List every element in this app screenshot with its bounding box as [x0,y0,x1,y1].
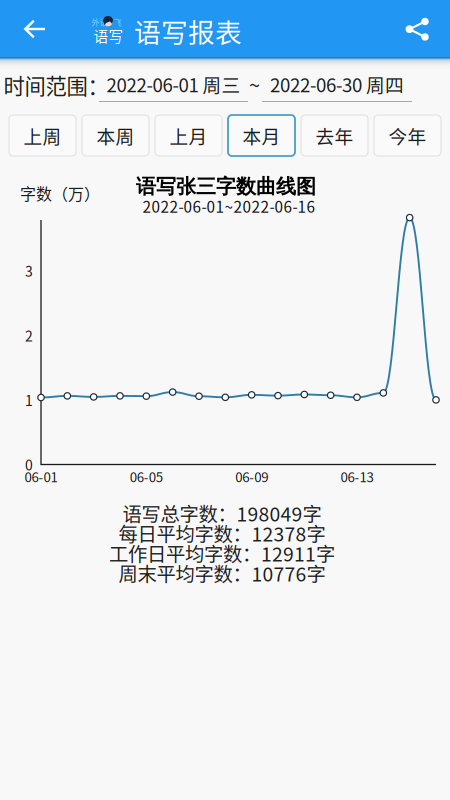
button[interactable]: 今年 [374,115,441,156]
button[interactable]: 2022-06-30 周四 [262,72,412,106]
staticText: 2022-06-01 周三 [106,70,240,97]
staticText: 上周 [23,122,61,149]
button[interactable]: 本周 [82,115,149,156]
staticText: 今年 [388,122,426,149]
staticText: 语写张三字数曲线图 [136,174,316,199]
button[interactable]: 上周 [9,115,76,156]
staticText: 06-05 [130,467,163,486]
staticText: 06-13 [340,467,373,486]
staticText: 06-09 [235,467,268,486]
staticText: 时间范围： [3,70,108,100]
staticText: 2022-06-30 周四 [270,70,404,97]
staticText: 去年 [315,122,353,149]
staticText: 本周 [96,122,134,149]
staticText: 2022-06-01~2022-06-16 [142,195,315,217]
button[interactable]: Share [394,5,440,53]
button[interactable]: 2022-06-01 周三 [99,72,248,106]
staticText: 周末平均字数：10776字 [118,559,325,587]
staticText: 0 [25,454,33,475]
button[interactable]: 去年 [301,115,368,156]
staticText: ~ [249,69,260,98]
staticText: 飞 [113,16,121,28]
button[interactable]: Back [11,5,59,53]
staticText: 2 [25,325,33,345]
staticText: 1 [25,390,33,410]
staticText: 语写总字数：198049字 [122,499,321,527]
staticText: 本月 [242,122,280,149]
staticText: 06-01 [24,467,57,486]
staticText: 字数（万） [20,181,100,205]
staticText: 外语 [91,16,107,28]
button[interactable]: 上月 [155,115,222,156]
staticText: 工作日平均字数：12911字 [109,539,335,567]
staticText: 上月 [169,122,207,149]
button[interactable]: 本月 [228,115,295,156]
staticText: 语写报表 [134,12,242,50]
staticText: 每日平均字数：12378字 [118,519,325,547]
staticText: 3 [25,261,33,281]
staticText: 语写 [93,25,123,46]
